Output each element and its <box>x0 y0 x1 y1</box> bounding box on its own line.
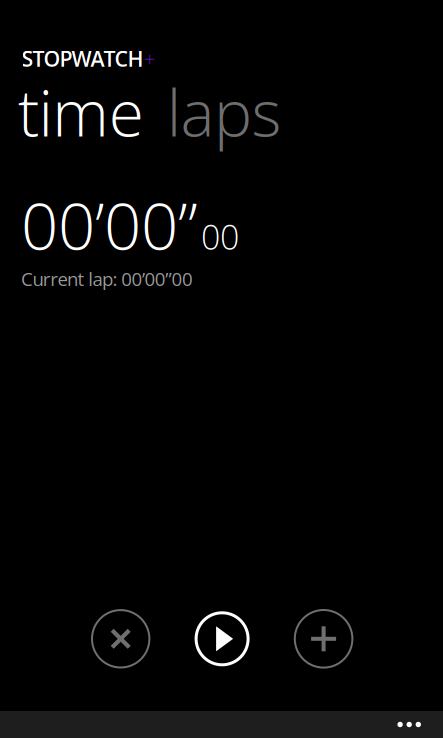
staticText: time <box>18 68 144 155</box>
button[interactable]: laps <box>167 68 282 155</box>
button[interactable]: Reset <box>92 610 149 667</box>
staticText: laps <box>167 68 282 155</box>
staticText: + <box>144 45 155 73</box>
staticText: STOPWATCH <box>21 44 143 73</box>
button[interactable]: Lap <box>295 610 352 668</box>
button[interactable]: Start <box>193 610 251 667</box>
staticText: 00’00” <box>21 180 198 269</box>
staticText: Current lap: 00’00”00 <box>21 266 193 291</box>
button[interactable]: time <box>18 68 144 155</box>
staticText: 00 <box>201 213 239 260</box>
button[interactable]: More options <box>0 711 443 738</box>
